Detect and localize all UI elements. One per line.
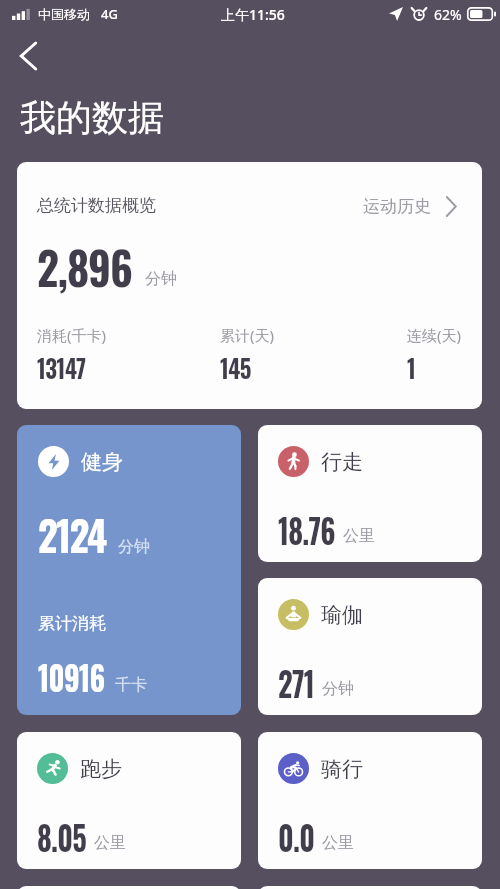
staticText: 我的数据 — [20, 95, 164, 140]
staticText: 8.05 — [37, 811, 87, 861]
staticText: 中国移动 — [38, 6, 90, 22]
staticText: 13147 — [37, 349, 86, 386]
button[interactable]: 行走 — [258, 425, 482, 562]
button[interactable]: Back — [6, 34, 50, 78]
staticText: 行走 — [321, 449, 363, 475]
staticText: 公里 — [343, 526, 375, 546]
staticText: 4G — [101, 5, 118, 23]
button[interactable] — [17, 886, 241, 889]
staticText: 骑行 — [321, 756, 363, 782]
staticText: 2,896 — [37, 232, 133, 300]
staticText: 2124 — [38, 503, 106, 565]
button[interactable]: 瑜伽 — [258, 578, 482, 715]
staticText: 累计(天) — [220, 325, 275, 345]
staticText: 健身 — [81, 449, 123, 475]
staticText: 10916 — [38, 651, 105, 701]
button[interactable] — [258, 886, 482, 889]
staticText: 总统计数据概览 — [37, 195, 156, 216]
staticText: 跑步 — [80, 756, 122, 782]
staticText: 千卡 — [115, 675, 147, 695]
staticText: 公里 — [322, 833, 354, 853]
staticText: 18.76 — [278, 504, 335, 554]
staticText: 分钟 — [145, 269, 177, 289]
staticText: 62% — [434, 5, 462, 24]
staticText: 145 — [220, 349, 251, 386]
staticText: 分钟 — [322, 679, 354, 699]
staticText: 消耗(千卡) — [37, 325, 107, 345]
button[interactable]: 健身 — [17, 425, 241, 715]
staticText: 运动历史 — [363, 196, 431, 217]
staticText: 271 — [278, 657, 314, 707]
staticText: 连续(天) — [407, 325, 462, 345]
staticText: 分钟 — [118, 537, 150, 557]
staticText: 公里 — [94, 833, 126, 853]
staticText: 上午11:56 — [221, 5, 285, 24]
staticText: 瑜伽 — [321, 602, 363, 628]
staticText: 1 — [407, 349, 416, 386]
button[interactable]: 跑步 — [17, 732, 241, 869]
button[interactable]: 总统计数据概览 — [17, 162, 482, 409]
staticText: 0.0 — [278, 811, 314, 861]
staticText: 累计消耗 — [38, 613, 106, 634]
button[interactable]: 骑行 — [258, 732, 482, 869]
